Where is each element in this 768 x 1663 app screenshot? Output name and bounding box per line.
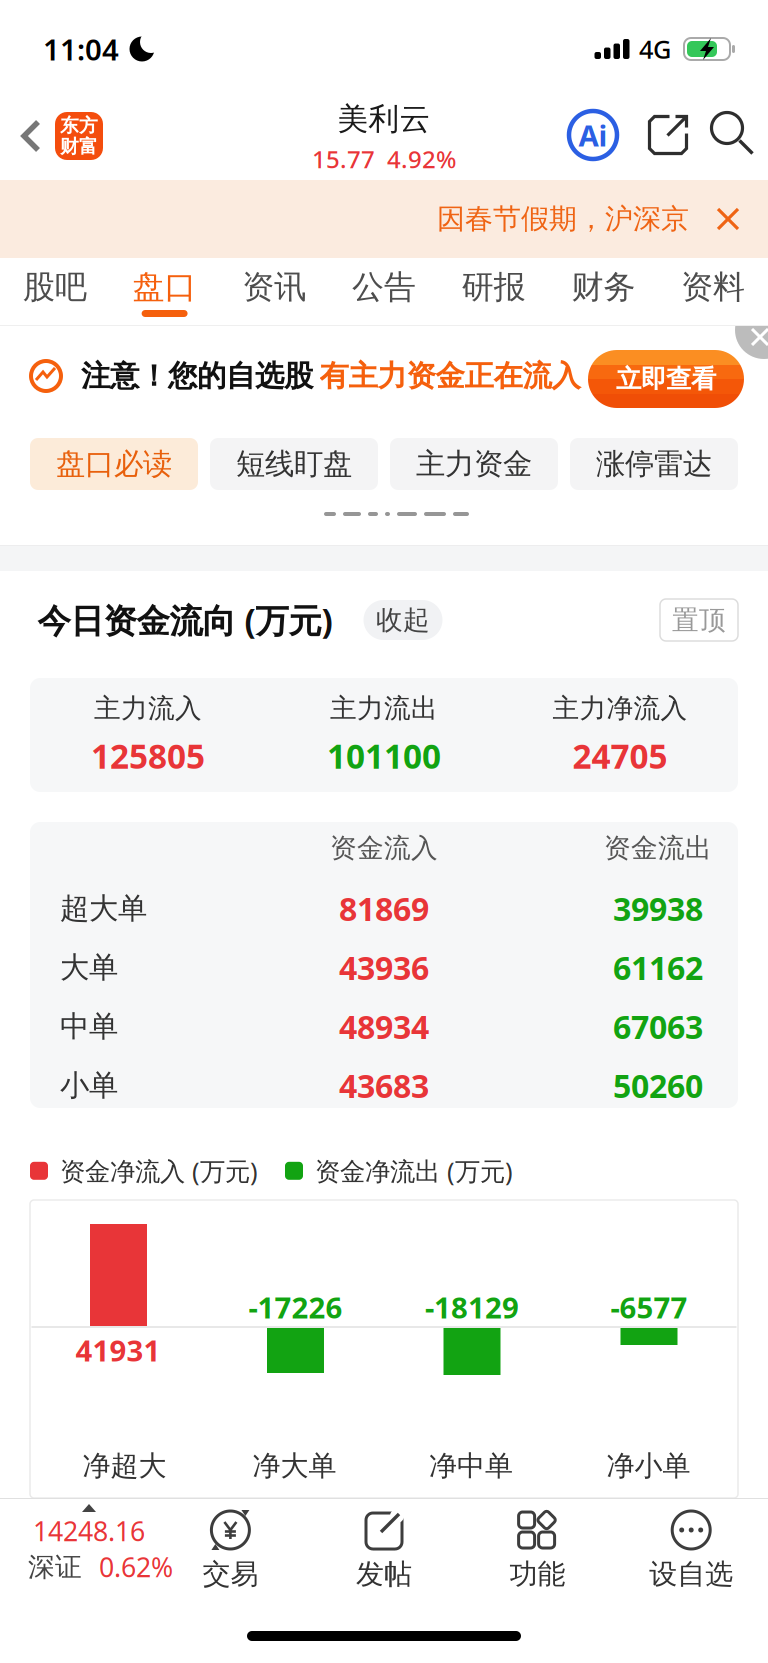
button[interactable]: 东方财富: [55, 112, 103, 160]
staticText: 今日资金流向 (万元): [37, 598, 332, 642]
staticText: 净小单: [606, 1449, 690, 1483]
staticText: 收起: [376, 604, 430, 636]
staticText: Ai: [578, 115, 607, 154]
staticText: 41931: [75, 1330, 160, 1369]
staticText: 中单: [60, 1008, 118, 1044]
staticText: 50260: [613, 1064, 703, 1107]
staticText: 股吧: [23, 267, 87, 307]
button[interactable]: 资料: [658, 258, 768, 325]
button[interactable]: 关闭: [715, 206, 741, 232]
staticText: 财富: [60, 135, 98, 158]
button[interactable]: 主力资金: [390, 438, 558, 490]
staticText: 净中单: [429, 1449, 513, 1483]
button[interactable]: 功能: [461, 1499, 614, 1591]
staticText: 短线盯盘: [236, 446, 352, 482]
staticText: 0.62%: [99, 1549, 173, 1585]
staticText: 功能: [510, 1557, 566, 1591]
button[interactable]: 涨停雷达: [570, 438, 738, 490]
button[interactable]: 搜索: [711, 112, 756, 157]
button[interactable]: 研报: [439, 258, 548, 325]
staticText: 超大单: [60, 890, 147, 926]
button[interactable]: 返回: [21, 119, 41, 153]
staticText: 盘口: [133, 267, 197, 307]
staticText: 24705: [572, 734, 667, 778]
staticText: 资金流出: [604, 832, 712, 864]
staticText: 81869: [339, 887, 429, 930]
button[interactable]: Ai助手: [567, 109, 619, 161]
staticText: 资讯: [242, 267, 306, 307]
staticText: 净超大: [82, 1449, 166, 1483]
staticText: 立即查看: [616, 363, 716, 394]
staticText: 14248.16: [33, 1513, 145, 1549]
staticText: -18129: [425, 1287, 519, 1326]
staticText: 主力资金: [416, 446, 532, 482]
staticText: 资金净流出 (万元): [315, 1154, 513, 1188]
staticText: -6577: [610, 1287, 687, 1326]
staticText: 43683: [339, 1064, 429, 1107]
staticText: 61162: [613, 946, 703, 989]
button[interactable]: 置顶: [660, 599, 738, 641]
staticText: 注意！您的自选股: [81, 358, 313, 394]
staticText: 置顶: [672, 604, 726, 636]
button[interactable]: 短线盯盘: [210, 438, 378, 490]
staticText: 有主力资金正在流入: [319, 358, 580, 394]
staticText: 因春节假期，沪深京: [437, 202, 689, 236]
button[interactable]: 盘口: [110, 258, 219, 325]
staticText: 15.77: [312, 143, 375, 175]
button[interactable]: 收起: [363, 600, 442, 640]
button[interactable]: 资讯: [219, 258, 329, 325]
button[interactable]: 盘口必读: [30, 438, 198, 490]
staticText: 101100: [327, 734, 441, 778]
button[interactable]: 立即查看: [588, 350, 744, 408]
staticText: 11:04: [43, 29, 119, 68]
staticText: 4G: [639, 32, 671, 66]
staticText: 小单: [60, 1067, 118, 1103]
staticText: 东方: [60, 114, 98, 137]
staticText: 主力净流入: [552, 692, 687, 725]
staticText: -17226: [248, 1287, 342, 1326]
button[interactable]: 关闭: [735, 301, 768, 359]
button[interactable]: 交易: [154, 1499, 307, 1591]
button[interactable]: 分享: [645, 112, 690, 157]
staticText: 主力流出: [330, 692, 438, 725]
staticText: 公告: [352, 267, 416, 307]
staticText: 涨停雷达: [596, 446, 712, 482]
staticText: 深证: [28, 1551, 82, 1583]
staticText: 主力流入: [94, 692, 202, 725]
staticText: 财务: [571, 267, 635, 307]
staticText: 48934: [339, 1005, 429, 1048]
staticText: 39938: [613, 887, 703, 930]
staticText: 净大单: [252, 1449, 336, 1483]
staticText: 交易: [202, 1557, 258, 1591]
staticText: 43936: [339, 946, 429, 989]
staticText: 美利云: [337, 100, 430, 138]
staticText: 资金净流入 (万元): [60, 1154, 258, 1188]
button[interactable]: 财务: [548, 258, 658, 325]
staticText: 发帖: [356, 1557, 412, 1591]
button[interactable]: 设自选: [614, 1499, 768, 1591]
staticText: 67063: [613, 1005, 703, 1048]
staticText: 125805: [91, 734, 205, 778]
staticText: 资料: [681, 267, 745, 307]
staticText: 资金流入: [330, 832, 438, 864]
button[interactable]: 发帖: [307, 1499, 461, 1591]
button[interactable]: 14248.16: [0, 1499, 180, 1589]
staticText: 4.92%: [387, 143, 456, 175]
staticText: 设自选: [649, 1557, 733, 1591]
staticText: 盘口必读: [56, 446, 172, 482]
button[interactable]: 公告: [329, 258, 439, 325]
staticText: 大单: [60, 949, 118, 985]
button[interactable]: 股吧: [0, 258, 110, 325]
staticText: 研报: [462, 267, 526, 307]
